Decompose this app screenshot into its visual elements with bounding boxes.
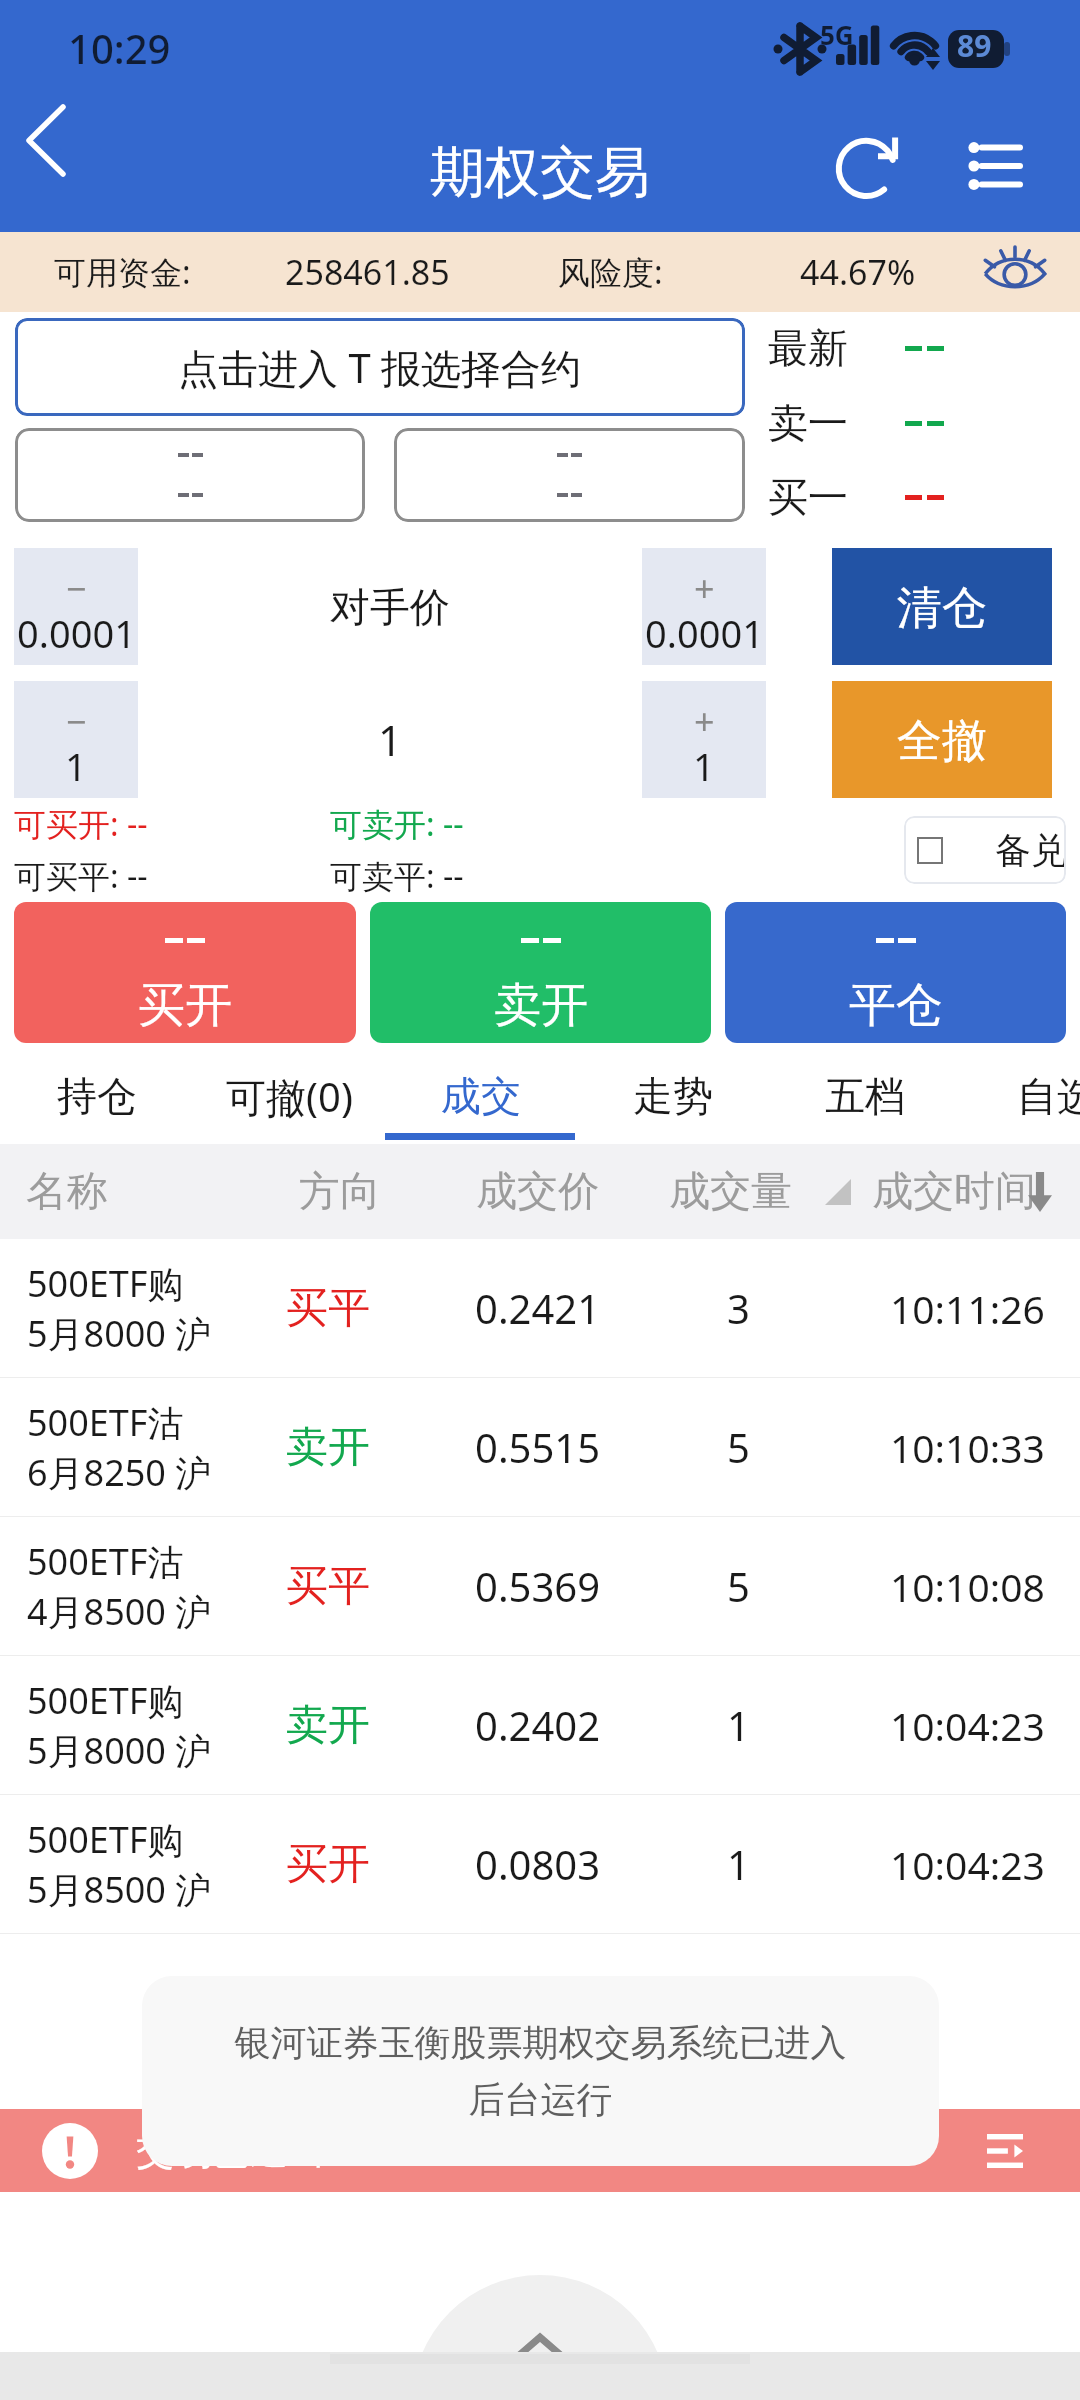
staticText: 5月8000 沪: [27, 1726, 212, 1775]
staticText: 卖开: [286, 1421, 370, 1474]
staticText: 10:04:23: [890, 1699, 1045, 1752]
staticText: 成交: [441, 1071, 521, 1121]
staticText: 5月8500 沪: [27, 1865, 212, 1914]
staticText: 自选: [1017, 1071, 1080, 1121]
staticText: 清仓: [897, 580, 987, 637]
staticText: 五档: [825, 1071, 905, 1121]
button[interactable]: Back: [0, 100, 118, 232]
button[interactable]: −: [14, 681, 138, 798]
button[interactable]: 500ETF沽: [0, 1378, 1080, 1516]
staticText: 1: [727, 1698, 750, 1752]
button[interactable]: 500ETF购: [0, 1239, 1080, 1377]
staticText: 1: [727, 1837, 750, 1891]
button[interactable]: 500ETF沽: [0, 1517, 1080, 1655]
staticText: 可买平: --: [14, 854, 148, 898]
button[interactable]: 平仓: [725, 902, 1066, 1043]
staticText: 可用资金:: [54, 250, 191, 294]
button[interactable]: 可撤(0): [194, 1044, 384, 1144]
button[interactable]: 自选: [962, 1044, 1080, 1144]
staticText: 走势: [633, 1071, 713, 1121]
button[interactable]: Refresh: [804, 100, 932, 232]
button[interactable]: 五档: [770, 1044, 960, 1144]
staticText: 0.5369: [475, 1559, 601, 1613]
staticText: 500ETF购: [27, 1259, 184, 1308]
staticText: −: [66, 564, 87, 613]
staticText: 买平: [286, 1282, 370, 1335]
staticText: 成交量: [669, 1166, 792, 1218]
staticText: 5: [727, 1559, 750, 1613]
staticText: 0.2402: [475, 1698, 601, 1752]
button[interactable]: 持仓: [2, 1044, 192, 1144]
button[interactable]: 1: [138, 681, 642, 798]
button[interactable]: 备兑: [904, 816, 1066, 884]
staticText: +: [694, 697, 715, 746]
button[interactable]: 卖开: [370, 902, 711, 1043]
staticText: 10:04:23: [890, 1838, 1045, 1891]
staticText: 卖开: [286, 1699, 370, 1752]
staticText: 1: [378, 711, 403, 768]
button[interactable]: [15, 428, 365, 522]
staticText: 方向: [299, 1166, 381, 1218]
staticText: 对手价: [330, 582, 450, 632]
staticText: 500ETF购: [27, 1815, 184, 1864]
button[interactable]: 成交: [386, 1044, 576, 1144]
staticText: 银河证券玉衡股票期权交易系统已进入 后台运行: [142, 2020, 939, 2123]
staticText: 258461.85: [285, 249, 450, 295]
staticText: 买平: [286, 1560, 370, 1613]
staticText: 0.5515: [475, 1420, 601, 1474]
button[interactable]: 500ETF购: [0, 1656, 1080, 1794]
staticText: 可买开: --: [14, 802, 148, 846]
staticText: 10:11:26: [890, 1282, 1045, 1335]
staticText: 可卖开: --: [330, 802, 464, 846]
staticText: 交易已退出: [136, 2127, 326, 2175]
staticText: 10:29: [68, 21, 171, 75]
staticText: 卖一: [768, 398, 848, 448]
button[interactable]: Toggle visibility: [976, 245, 1054, 299]
button[interactable]: Menu: [932, 100, 1060, 232]
staticText: 10:10:33: [890, 1421, 1045, 1474]
staticText: 0.0803: [475, 1837, 601, 1891]
staticText: 4月8500 沪: [27, 1587, 212, 1636]
button[interactable]: [394, 428, 745, 522]
button[interactable]: 点击进入 T 报选择合约: [15, 318, 745, 416]
staticText: 可撤(0): [226, 1069, 353, 1124]
staticText: 1: [693, 740, 715, 792]
staticText: 买开: [286, 1838, 370, 1891]
staticText: 风险度:: [558, 250, 663, 294]
staticText: 44.67%: [800, 249, 916, 295]
staticText: 卖开: [494, 976, 588, 1035]
staticText: 0.0001: [645, 607, 764, 659]
staticText: 备兑: [995, 828, 1066, 873]
staticText: 3: [727, 1281, 750, 1335]
button[interactable]: 走势: [578, 1044, 768, 1144]
staticText: 0.2421: [475, 1281, 601, 1335]
staticText: 5月8000 沪: [27, 1309, 212, 1358]
staticText: 500ETF购: [27, 1676, 184, 1725]
staticText: 成交时间: [872, 1166, 1036, 1218]
staticText: 500ETF沽: [27, 1537, 184, 1586]
button[interactable]: 买开: [14, 902, 356, 1043]
staticText: 平仓: [849, 976, 943, 1035]
staticText: 89: [957, 25, 992, 66]
staticText: 名称: [26, 1166, 108, 1218]
button[interactable]: +: [642, 548, 766, 665]
staticText: 最新: [768, 323, 848, 373]
staticText: 500ETF沽: [27, 1398, 184, 1447]
staticText: 全撤: [897, 713, 987, 770]
button[interactable]: 500ETF购: [0, 1795, 1080, 1933]
button[interactable]: 对手价: [138, 548, 642, 665]
staticText: 成交价: [476, 1166, 599, 1218]
button[interactable]: Expand messages: [987, 2134, 1023, 2168]
button[interactable]: −: [14, 548, 138, 665]
staticText: 买一: [768, 472, 848, 522]
button[interactable]: 全撤: [832, 681, 1052, 798]
staticText: 点击进入 T 报选择合约: [178, 340, 582, 395]
staticText: 5G: [820, 17, 854, 52]
staticText: 5: [727, 1420, 750, 1474]
button[interactable]: +: [642, 681, 766, 798]
staticText: 持仓: [57, 1071, 137, 1121]
staticText: +: [694, 564, 715, 613]
staticText: 10:10:08: [890, 1560, 1045, 1613]
button[interactable]: 清仓: [832, 548, 1052, 665]
staticText: 6月8250 沪: [27, 1448, 212, 1497]
